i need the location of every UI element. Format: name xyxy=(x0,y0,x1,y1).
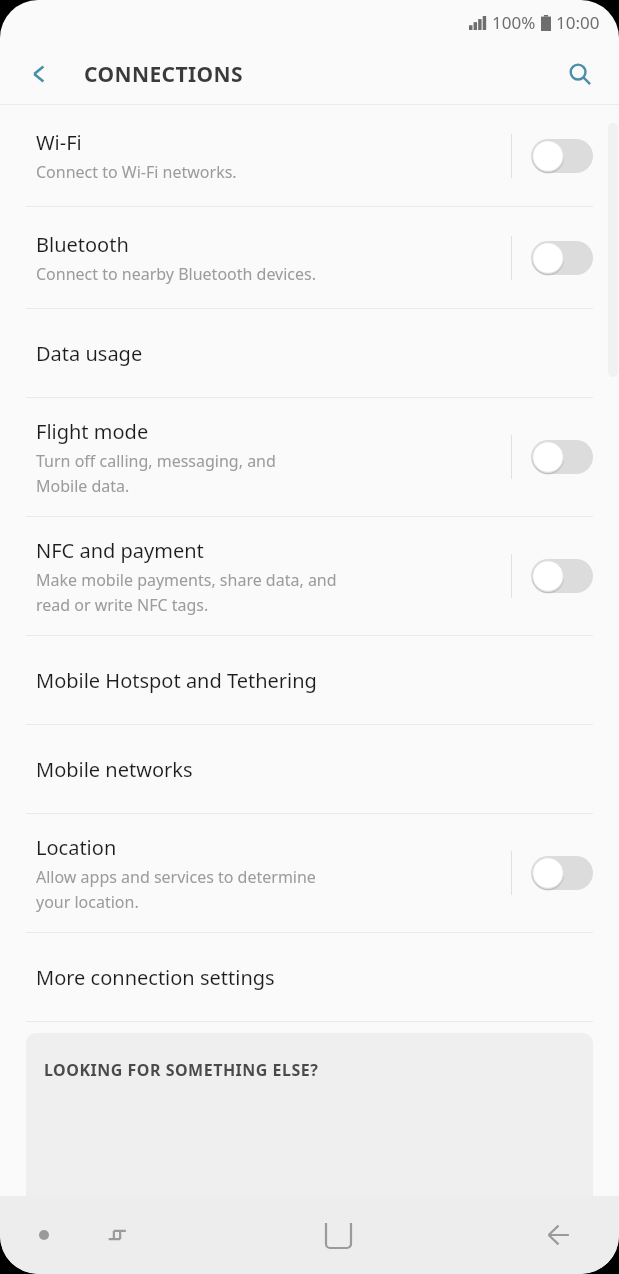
staticText: Make mobile payments, share data, and re… xyxy=(36,569,337,615)
staticText: Wi-Fi xyxy=(36,129,82,156)
staticText: Allow apps and services to determine you… xyxy=(36,866,316,912)
button[interactable]: LOOKING FOR SOMETHING ELSE? xyxy=(26,1033,593,1196)
staticText: More connection settings xyxy=(36,964,275,991)
button[interactable]: Bluetooth toggle xyxy=(531,240,593,276)
staticText: CONNECTIONS xyxy=(84,60,244,89)
staticText: 10:00 xyxy=(556,11,600,34)
button[interactable]: NFC and payment xyxy=(0,517,619,635)
button[interactable]: Mobile networks xyxy=(0,725,619,813)
staticText: Data usage xyxy=(36,340,143,367)
staticText: Connect to nearby Bluetooth devices. xyxy=(36,263,317,285)
button[interactable]: Home xyxy=(311,1208,365,1262)
button[interactable]: NFC and payment toggle xyxy=(531,558,593,594)
staticText: 100% xyxy=(492,11,536,34)
button[interactable]: Wi-Fi xyxy=(0,105,619,206)
staticText: Turn off calling, messaging, and Mobile … xyxy=(36,450,276,496)
staticText: Flight mode xyxy=(36,418,149,445)
staticText: Mobile Hotspot and Tethering xyxy=(36,667,317,694)
button[interactable]: Search xyxy=(555,49,605,99)
button[interactable]: Mobile Hotspot and Tethering xyxy=(0,636,619,724)
button[interactable]: Location xyxy=(0,814,619,932)
staticText: NFC and payment xyxy=(36,537,204,564)
button[interactable]: Recent apps xyxy=(90,1208,144,1262)
button[interactable]: Bluetooth xyxy=(0,207,619,308)
staticText: Connect to Wi-Fi networks. xyxy=(36,161,237,183)
button[interactable]: Location toggle xyxy=(531,855,593,891)
staticText: Location xyxy=(36,834,117,861)
button[interactable]: Keyboard indicator xyxy=(20,1211,68,1259)
staticText: Bluetooth xyxy=(36,231,129,258)
staticText: LOOKING FOR SOMETHING ELSE? xyxy=(44,1059,319,1081)
button[interactable]: Flight mode xyxy=(0,398,619,516)
button[interactable]: Back xyxy=(14,49,64,99)
button[interactable]: Data usage xyxy=(0,309,619,397)
button[interactable]: Flight mode toggle xyxy=(531,439,593,475)
staticText: Mobile networks xyxy=(36,756,193,783)
button[interactable]: Wi-Fi toggle xyxy=(531,138,593,174)
button[interactable]: More connection settings xyxy=(0,933,619,1021)
button[interactable]: Back xyxy=(531,1208,585,1262)
